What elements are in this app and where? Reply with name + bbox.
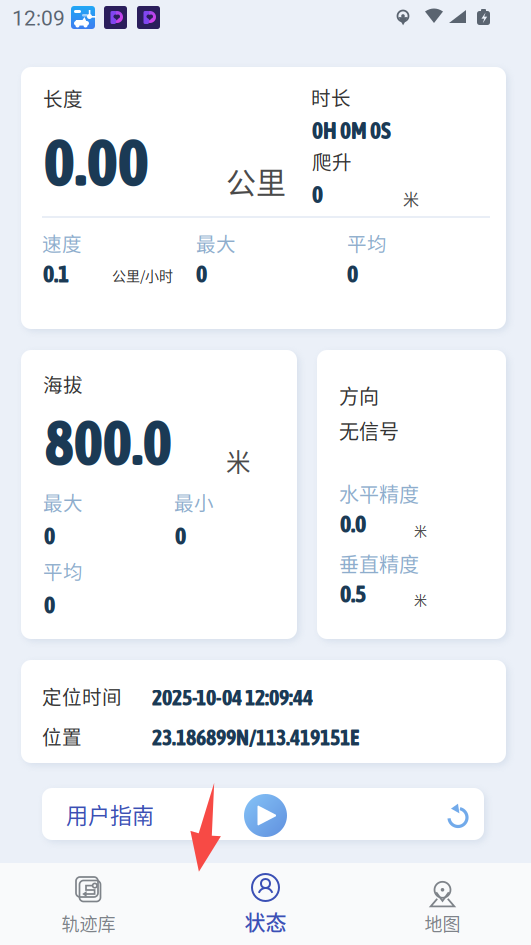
staticText: 米 [403, 187, 419, 210]
staticText: 0 [44, 591, 55, 618]
staticText: 平均 [43, 557, 83, 585]
button[interactable]: 轨迹库 [0, 863, 177, 945]
staticText: 公里 [226, 159, 286, 202]
staticText: 速度 [42, 229, 82, 257]
staticText: 12:09 [12, 6, 65, 31]
staticText: 米 [414, 521, 427, 540]
staticText: 无信号 [339, 416, 399, 445]
staticText: 最小 [174, 488, 214, 516]
staticText: 0.0 [340, 510, 366, 537]
staticText: 0.00 [44, 125, 149, 199]
staticText: 最大 [196, 229, 236, 257]
staticText: 爬升 [312, 147, 352, 175]
staticText: 2025-10-04 12:09:44 [152, 685, 313, 710]
staticText: 垂直精度 [339, 549, 419, 578]
staticText: 公里/小时 [112, 265, 173, 285]
staticText: 最大 [43, 488, 83, 516]
staticText: 800.0 [45, 408, 172, 478]
staticText: 状态 [244, 906, 286, 936]
staticText: 海拔 [43, 370, 83, 398]
button[interactable]: Reset [437, 792, 479, 838]
staticText: 0 [175, 522, 186, 549]
staticText: 0 [196, 260, 207, 287]
staticText: 定位时间 [42, 682, 122, 710]
button[interactable]: 地图 [354, 863, 531, 945]
staticText: 0.1 [43, 260, 69, 287]
staticText: 0 [312, 181, 323, 208]
button[interactable]: 状态 [177, 863, 354, 945]
staticText: 水平精度 [339, 479, 419, 508]
staticText: 23.186899N/113.419151E [152, 725, 359, 750]
button[interactable]: Start recording [244, 794, 287, 837]
staticText: 0 [347, 260, 358, 287]
staticText: 0H 0M 0S [312, 117, 391, 144]
staticText: 用户指南 [66, 798, 154, 830]
staticText: 0.5 [340, 580, 366, 607]
staticText: 位置 [42, 722, 82, 750]
staticText: 时长 [311, 83, 351, 111]
staticText: 长度 [43, 84, 83, 112]
staticText: 平均 [347, 229, 387, 257]
button[interactable]: 用户指南 [56, 784, 164, 844]
staticText: 米 [226, 443, 251, 478]
staticText: 米 [414, 590, 427, 609]
staticText: 地图 [424, 910, 460, 936]
staticText: 方向 [339, 381, 379, 410]
staticText: 轨迹库 [61, 910, 115, 936]
staticText: 0 [44, 522, 55, 549]
